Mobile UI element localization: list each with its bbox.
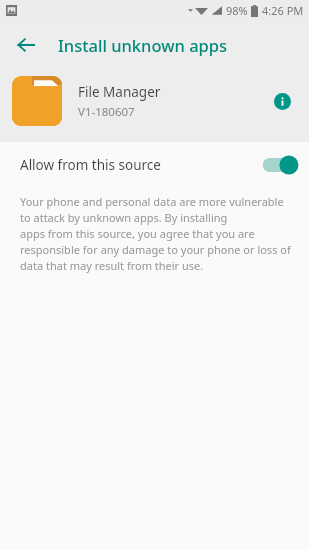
staticText: V1-180607: [78, 104, 135, 120]
button[interactable]: Allow from this source: [0, 142, 309, 188]
button[interactable]: File Manager: [0, 70, 309, 132]
staticText: Install unknown apps: [58, 34, 228, 56]
staticText: 4:26 PM: [262, 3, 304, 18]
staticText: Your phone and personal data are more vu…: [20, 194, 295, 273]
staticText: 98%: [226, 3, 248, 18]
button[interactable]: Back: [6, 25, 46, 65]
staticText: File Manager: [78, 83, 161, 101]
staticText: Allow from this source: [20, 156, 255, 174]
button[interactable]: App info: [265, 84, 299, 118]
